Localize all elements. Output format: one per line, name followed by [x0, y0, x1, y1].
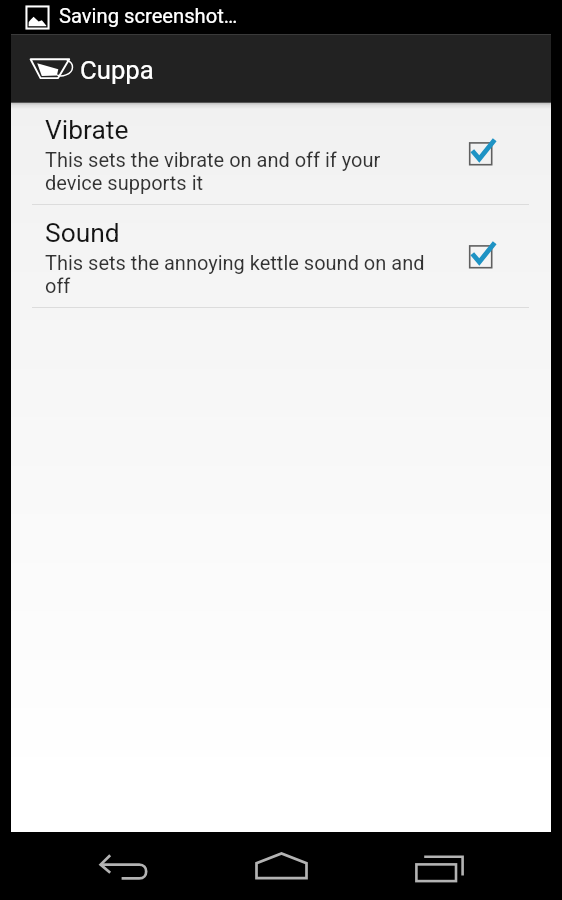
button[interactable]: Home [253, 832, 309, 900]
button[interactable]: Toggle setting [463, 239, 499, 275]
button[interactable]: Toggle setting [463, 136, 499, 172]
button[interactable]: Back [95, 832, 151, 900]
button[interactable]: Cuppa [11, 34, 551, 102]
staticText: Vibrate [45, 115, 129, 146]
button[interactable]: Vibrate [11, 102, 551, 204]
staticText: This sets the vibrate on and off if your… [45, 148, 430, 194]
button[interactable]: Sound [11, 205, 551, 307]
staticText: This sets the annoying kettle sound on a… [45, 251, 430, 297]
staticText: Cuppa [80, 55, 154, 85]
staticText: Sound [45, 218, 120, 249]
staticText: Saving screenshot… [59, 4, 238, 28]
button[interactable]: Recent apps [411, 832, 467, 900]
